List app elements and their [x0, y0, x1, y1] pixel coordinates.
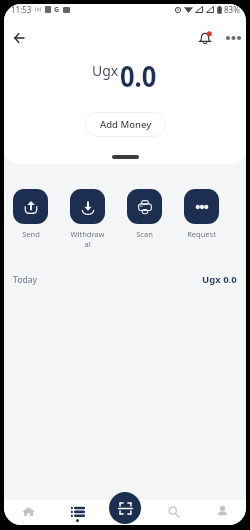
button[interactable]: Home — [4, 500, 53, 525]
button[interactable]: More options — [223, 28, 243, 48]
staticText: Send — [22, 229, 40, 239]
button[interactable]: Notifications — [195, 28, 215, 48]
staticText: 0.0 — [120, 56, 157, 95]
staticText: (o) — [35, 6, 42, 13]
staticText: 11:53 — [11, 4, 32, 15]
button[interactable]: Send — [13, 189, 48, 239]
button[interactable]: Search — [150, 500, 198, 525]
staticText: Today — [13, 274, 37, 286]
staticText: Add Money — [100, 118, 152, 131]
button[interactable]: Withdrawal — [70, 189, 105, 249]
button[interactable]: Scan code — [109, 492, 141, 524]
staticText: Withdrawal — [70, 229, 105, 249]
button[interactable]: Transactions — [53, 500, 102, 525]
staticText: Ugx 0.0 — [202, 273, 237, 286]
staticText: G — [54, 5, 60, 15]
button[interactable]: Profile — [198, 500, 246, 525]
staticText: 83% — [224, 4, 240, 15]
staticText: Ugx — [92, 61, 119, 80]
button[interactable]: Back — [8, 27, 30, 49]
button[interactable]: Request — [184, 189, 219, 239]
button[interactable]: Scan — [127, 189, 162, 239]
staticText: Scan — [136, 229, 153, 239]
button[interactable]: Add Money — [85, 112, 166, 137]
staticText: Request — [187, 229, 216, 239]
